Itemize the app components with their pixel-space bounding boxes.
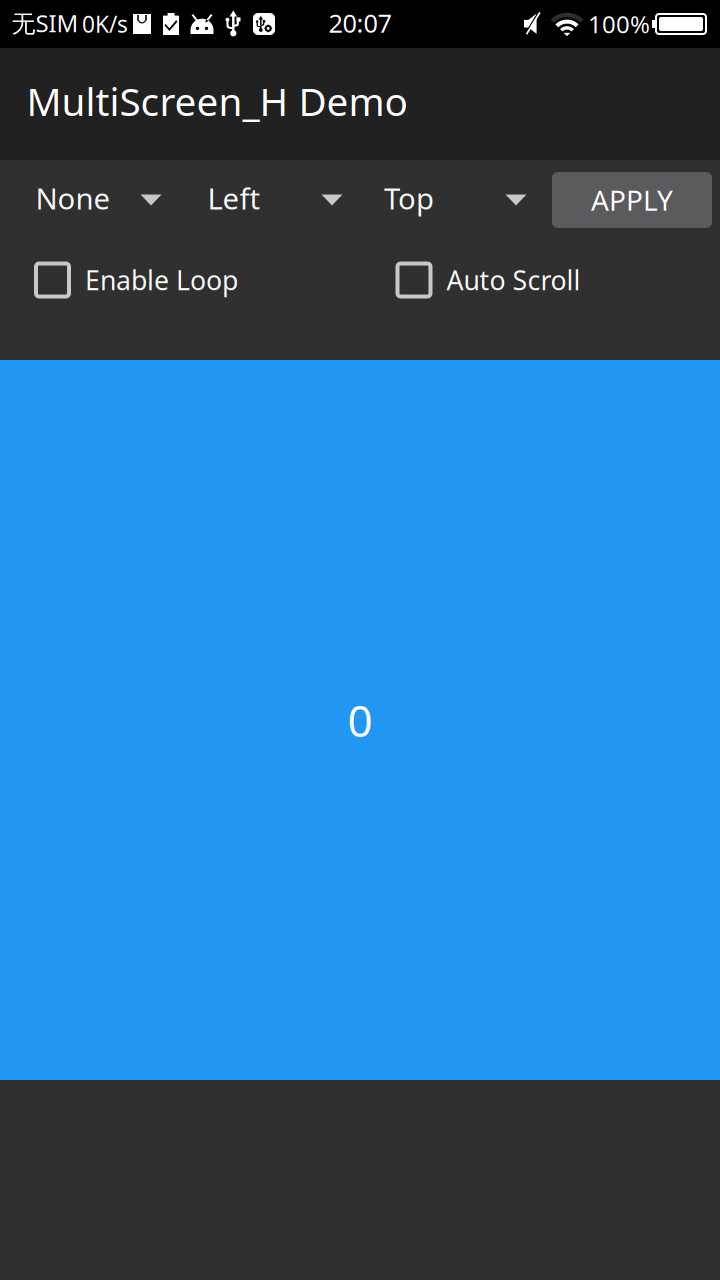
button[interactable]: Left: [186, 160, 362, 240]
staticText: 100%: [588, 8, 650, 40]
staticText: Auto Scroll: [446, 262, 580, 298]
staticText: Left: [207, 178, 260, 217]
button[interactable]: Top: [368, 160, 546, 240]
staticText: 0: [347, 691, 372, 749]
staticText: Top: [384, 178, 434, 217]
button[interactable]: Auto Scroll: [397, 253, 580, 307]
staticText: None: [35, 178, 110, 217]
staticText: APPLY: [591, 181, 673, 219]
staticText: MultiScreen_H Demo: [26, 75, 407, 127]
staticText: 0K/s: [82, 9, 128, 39]
staticText: 无SIM: [11, 7, 78, 39]
button[interactable]: APPLY: [552, 172, 712, 228]
staticText: 20:07: [328, 6, 391, 40]
button[interactable]: Enable Loop: [36, 253, 238, 307]
button[interactable]: None: [16, 160, 180, 240]
staticText: Enable Loop: [85, 262, 238, 298]
